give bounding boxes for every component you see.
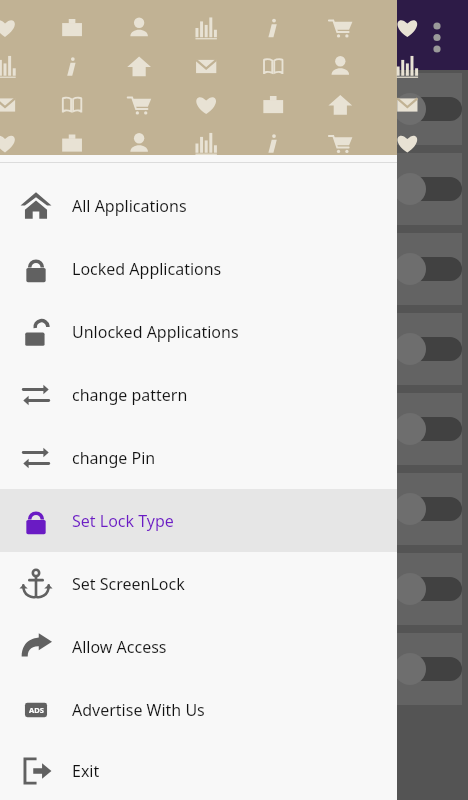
- button[interactable]: [6, 473, 462, 545]
- button[interactable]: ADS: [0, 678, 397, 741]
- button[interactable]: change Pin: [0, 426, 397, 489]
- staticText: Exit: [72, 760, 100, 782]
- staticText: Set ScreenLock: [72, 573, 185, 595]
- button[interactable]: [6, 73, 462, 145]
- button[interactable]: [6, 553, 462, 625]
- button[interactable]: More options: [0, 0, 468, 70]
- staticText: change pattern: [72, 384, 188, 406]
- staticText: change Pin: [72, 447, 156, 469]
- button[interactable]: [6, 233, 462, 305]
- button[interactable]: All Applications: [0, 174, 397, 237]
- button[interactable]: Unlocked Applications: [0, 300, 397, 363]
- button[interactable]: Allow Access: [0, 615, 397, 678]
- button[interactable]: [6, 313, 462, 385]
- button[interactable]: [6, 633, 462, 705]
- staticText: All Applications: [72, 195, 187, 217]
- button[interactable]: Exit: [0, 741, 397, 800]
- button[interactable]: [6, 153, 462, 225]
- button[interactable]: change pattern: [0, 363, 397, 426]
- button[interactable]: Locked Applications: [0, 237, 397, 300]
- staticText: Allow Access: [72, 636, 167, 658]
- staticText: Set Lock Type: [72, 510, 174, 532]
- staticText: Locked Applications: [72, 258, 222, 280]
- button[interactable]: [6, 393, 462, 465]
- button[interactable]: Set ScreenLock: [0, 552, 397, 615]
- staticText: ADS: [29, 705, 44, 715]
- staticText: Advertise With Us: [72, 699, 205, 721]
- button[interactable]: Set Lock Type: [0, 489, 397, 552]
- staticText: Unlocked Applications: [72, 321, 239, 343]
